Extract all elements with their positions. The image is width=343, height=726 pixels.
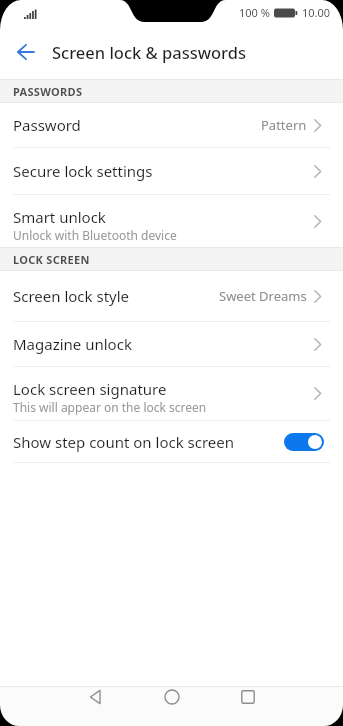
button[interactable]: [284, 433, 324, 451]
staticText: Screen lock & passwords: [52, 41, 247, 63]
staticText: Password: [13, 115, 81, 135]
staticText: 100 %: [239, 5, 270, 20]
button[interactable]: [240, 689, 256, 705]
staticText: Magazine unlock: [13, 334, 132, 354]
staticText: Pattern: [261, 116, 307, 134]
staticText: PASSWORDS: [13, 84, 83, 99]
staticText: Smart unlock: [13, 207, 106, 227]
staticText: LOCK SCREEN: [13, 252, 90, 267]
staticText: Lock screen signature: [13, 379, 167, 399]
button[interactable]: Lock screen signature: [0, 367, 343, 420]
button[interactable]: [17, 44, 35, 60]
button[interactable]: [164, 689, 180, 705]
button[interactable]: Password: [0, 103, 343, 147]
staticText: This will appear on the lock screen: [13, 399, 207, 415]
button[interactable]: Secure lock settings: [0, 148, 343, 194]
staticText: Unlock with Bluetooth device: [13, 227, 177, 243]
button[interactable]: Magazine unlock: [0, 322, 343, 366]
staticText: Show step count on lock screen: [13, 432, 235, 452]
button[interactable]: Show step count on lock screen: [0, 421, 343, 462]
staticText: Secure lock settings: [13, 161, 153, 181]
staticText: Screen lock style: [13, 286, 130, 306]
staticText: 10.00: [302, 5, 331, 20]
staticText: Sweet Dreams: [219, 287, 307, 305]
button[interactable]: Smart unlock: [0, 195, 343, 247]
button[interactable]: [88, 689, 104, 705]
button[interactable]: Screen lock style: [0, 271, 343, 321]
